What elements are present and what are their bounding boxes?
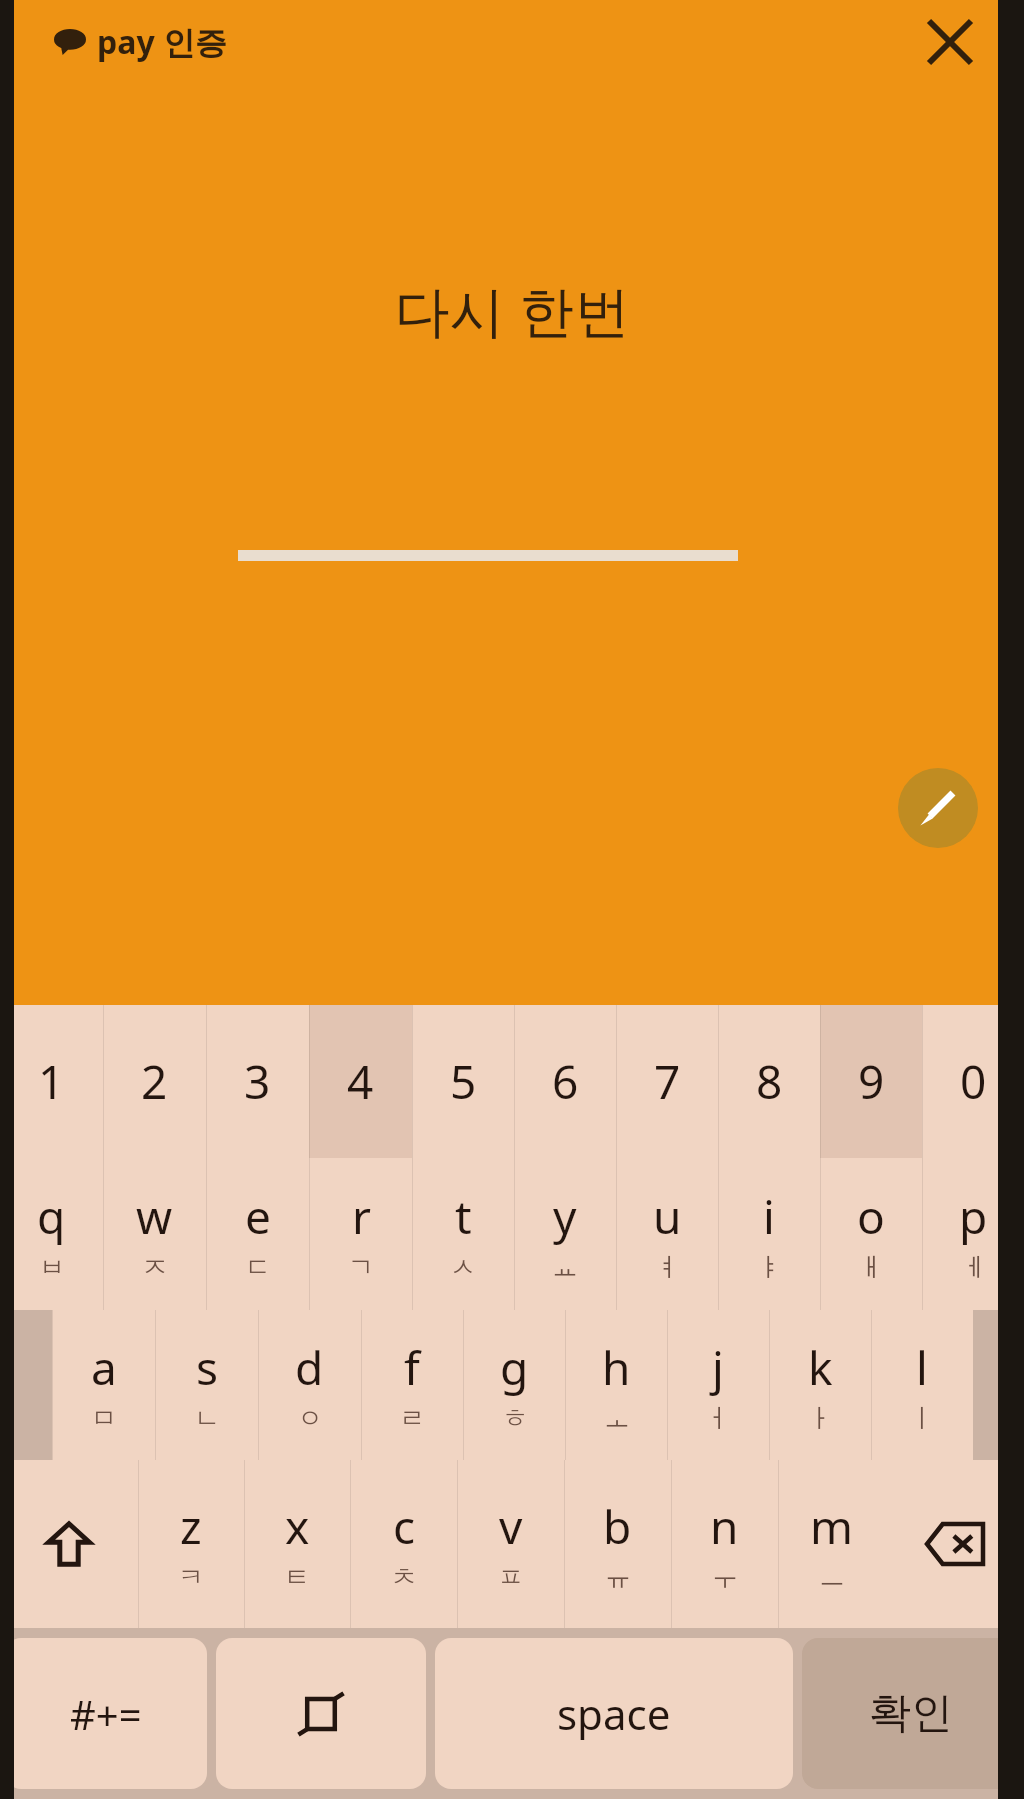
staticText: k	[808, 1336, 833, 1399]
staticText: 1	[38, 1050, 65, 1113]
button[interactable]: u	[616, 1158, 718, 1310]
button[interactable]: 4	[309, 1005, 412, 1158]
button[interactable]: pay 인증	[50, 16, 231, 68]
button[interactable]: i	[718, 1158, 820, 1310]
button[interactable]: 2	[103, 1005, 206, 1158]
button[interactable]: Shift	[0, 1460, 138, 1628]
button[interactable]: 6	[514, 1005, 616, 1158]
staticText: 7	[654, 1050, 681, 1113]
button[interactable]: 5	[412, 1005, 514, 1158]
button[interactable]: y	[514, 1158, 616, 1310]
staticText: ㅈ	[142, 1251, 168, 1284]
staticText: a	[91, 1336, 117, 1399]
button[interactable]: Edit	[898, 768, 978, 848]
button[interactable]: f	[361, 1310, 463, 1460]
staticText: o	[857, 1185, 885, 1248]
staticText: ㅁ	[91, 1402, 117, 1435]
staticText: x	[285, 1495, 310, 1558]
staticText: r	[352, 1185, 371, 1248]
staticText: j	[712, 1336, 724, 1399]
staticText: pay 인증	[97, 20, 227, 64]
staticText: ㅂ	[39, 1251, 65, 1284]
button[interactable]: 9	[820, 1005, 922, 1158]
button[interactable]: Change language	[216, 1638, 426, 1789]
staticText: f	[404, 1336, 420, 1399]
staticText: ㄴ	[194, 1402, 220, 1435]
staticText: i	[763, 1185, 775, 1248]
button[interactable]: 0	[922, 1005, 1024, 1158]
button[interactable]: Backspace	[885, 1460, 1024, 1628]
staticText: #+=	[70, 1687, 142, 1741]
button[interactable]: e	[206, 1158, 309, 1310]
staticText: y	[553, 1185, 577, 1248]
staticText: u	[653, 1185, 682, 1248]
staticText: n	[710, 1495, 739, 1558]
staticText: v	[499, 1495, 523, 1558]
staticText: ㅍ	[498, 1561, 524, 1594]
staticText: h	[602, 1336, 631, 1399]
staticText: space	[557, 1685, 671, 1742]
button[interactable]: s	[155, 1310, 258, 1460]
button[interactable]: #+=	[5, 1638, 207, 1789]
button[interactable]: a	[52, 1310, 155, 1460]
staticText: t	[455, 1185, 472, 1248]
staticText: ㅇ	[297, 1402, 323, 1435]
staticText: 8	[756, 1050, 783, 1113]
button[interactable]: g	[463, 1310, 565, 1460]
button[interactable]: c	[350, 1460, 457, 1628]
staticText: ㅋ	[178, 1561, 204, 1594]
button[interactable]: n	[671, 1460, 778, 1628]
button[interactable]: j	[667, 1310, 769, 1460]
staticText: s	[196, 1336, 219, 1399]
button[interactable]: v	[457, 1460, 564, 1628]
staticText: c	[393, 1495, 416, 1558]
button[interactable]: r	[309, 1158, 412, 1310]
button[interactable]: 3	[206, 1005, 309, 1158]
staticText: ㅡ	[819, 1561, 845, 1594]
button[interactable]: p	[922, 1158, 1024, 1310]
staticText: d	[295, 1336, 324, 1399]
staticText: ㅎ	[502, 1402, 528, 1435]
staticText: ㅛ	[552, 1251, 578, 1284]
button[interactable]: 1	[0, 1005, 103, 1158]
button[interactable]: t	[412, 1158, 514, 1310]
staticText: g	[500, 1336, 529, 1399]
staticText: ㅕ	[655, 1251, 681, 1284]
staticText: 0	[960, 1050, 987, 1113]
button[interactable]: 확인	[802, 1638, 1019, 1789]
button[interactable]: o	[820, 1158, 922, 1310]
button[interactable]: h	[565, 1310, 667, 1460]
staticText: ㄹ	[399, 1402, 425, 1435]
button[interactable]: d	[258, 1310, 361, 1460]
button[interactable]: w	[103, 1158, 206, 1310]
button[interactable]: x	[244, 1460, 350, 1628]
button[interactable]: space	[435, 1638, 793, 1789]
staticText: z	[180, 1495, 202, 1558]
staticText: ㄱ	[348, 1251, 374, 1284]
staticText: ㅑ	[756, 1251, 782, 1284]
button[interactable]: 8	[718, 1005, 820, 1158]
staticText: 5	[450, 1050, 477, 1113]
button[interactable]: b	[564, 1460, 671, 1628]
button[interactable]: Close	[914, 6, 986, 78]
button[interactable]: k	[769, 1310, 871, 1460]
button[interactable]: q	[0, 1158, 103, 1310]
staticText: e	[245, 1185, 271, 1248]
staticText: 확인	[869, 1687, 953, 1740]
staticText: p	[959, 1185, 988, 1248]
staticText: m	[810, 1495, 854, 1558]
staticText: ㅓ	[705, 1402, 731, 1435]
staticText: 2	[141, 1050, 168, 1113]
button[interactable]: 7	[616, 1005, 718, 1158]
staticText: 4	[347, 1050, 374, 1113]
button[interactable]: l	[871, 1310, 973, 1460]
button[interactable]: m	[778, 1460, 885, 1628]
staticText: 9	[858, 1050, 885, 1113]
staticText: ㅏ	[807, 1402, 833, 1435]
button[interactable]: z	[138, 1460, 244, 1628]
staticText: ㅔ	[961, 1251, 987, 1284]
staticText: ㅗ	[604, 1402, 630, 1435]
staticText: 3	[244, 1050, 271, 1113]
staticText: 다시 한번	[0, 272, 1024, 347]
staticText: 6	[552, 1050, 579, 1113]
